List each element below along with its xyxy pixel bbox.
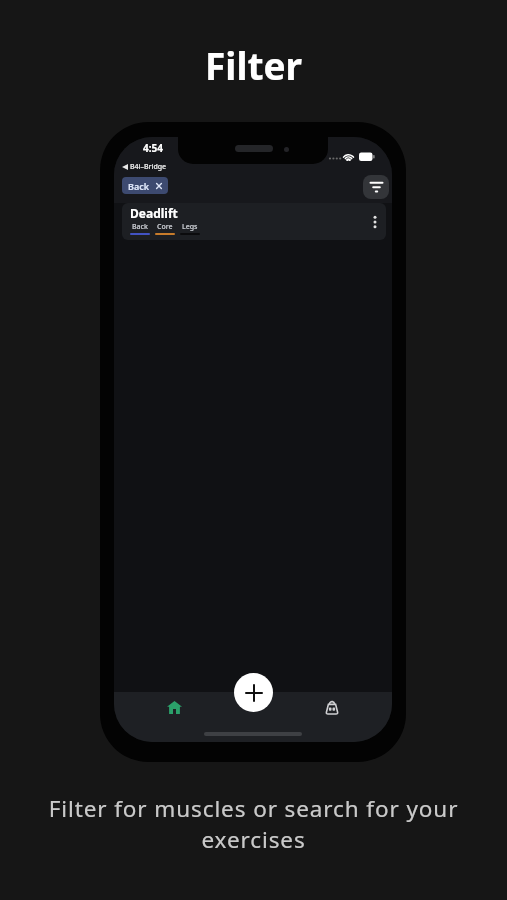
staticText: Back	[128, 180, 150, 192]
staticText: Filter for muscles or search for your ex…	[0, 793, 507, 854]
staticText: B4i–Bridge	[130, 162, 167, 172]
button[interactable]	[363, 175, 389, 199]
button[interactable]	[316, 694, 348, 722]
button[interactable]	[234, 673, 273, 712]
staticText: Filter	[205, 40, 303, 90]
staticText: Core	[157, 222, 173, 232]
staticText: Deadlift	[130, 205, 178, 221]
staticText: Legs	[182, 222, 198, 232]
staticText: 4:54	[143, 141, 163, 155]
button[interactable]: Back	[122, 177, 168, 194]
staticText: Back	[132, 222, 148, 232]
button[interactable]: Deadlift	[122, 203, 386, 240]
button[interactable]	[158, 693, 190, 721]
